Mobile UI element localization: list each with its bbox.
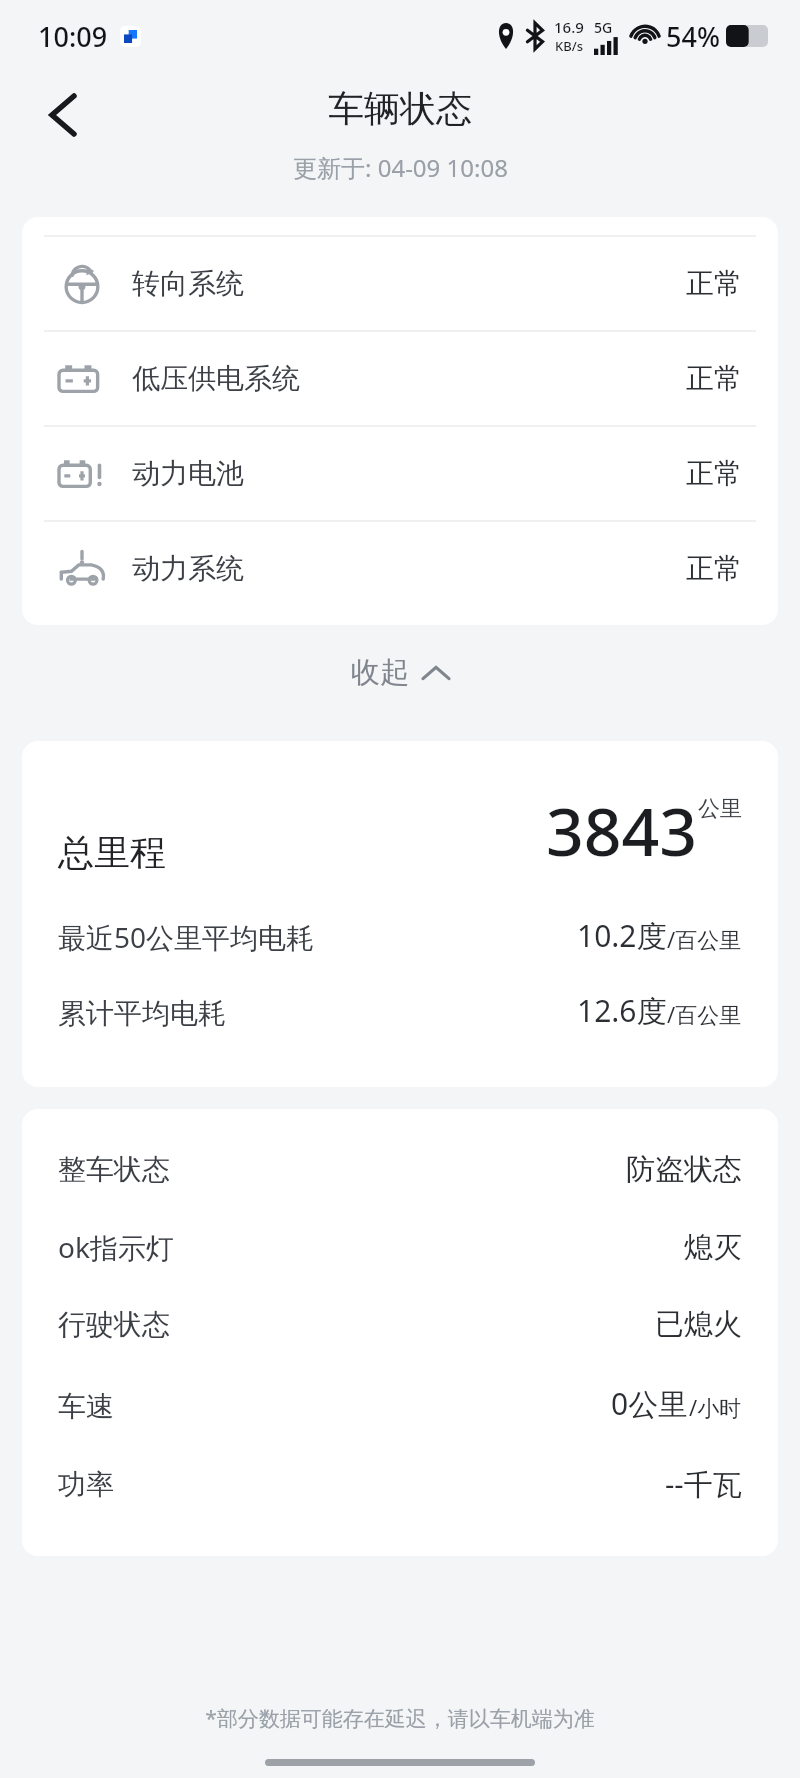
button[interactable]: 转向系统 [22,235,778,330]
staticText: --千瓦 [665,1464,742,1504]
staticText: /小时 [689,1392,742,1422]
button[interactable]: 收起 [327,644,473,701]
staticText: 低压供电系统 [132,361,300,396]
staticText: 公里 [698,795,742,823]
staticText: 54% [666,18,720,55]
staticText: 更新于: 04-09 10:08 [293,151,508,184]
button[interactable]: 动力系统 [22,520,778,615]
staticText: 车辆状态 [328,86,472,131]
button[interactable]: 总里程 [58,785,742,875]
button[interactable]: 整车状态 [58,1151,742,1188]
staticText: 总里程 [58,830,166,875]
staticText: KB/s [555,37,584,55]
staticText: 正常 [686,551,742,586]
staticText: 熄灭 [684,1229,742,1266]
staticText: 正常 [686,361,742,396]
staticText: 10:09 [38,18,108,55]
staticText: 动力电池 [132,456,244,491]
staticText: 动力系统 [132,551,244,586]
button[interactable]: 行驶状态 [58,1306,742,1343]
staticText: 转向系统 [132,266,244,301]
staticText: 累计平均电耗 [58,996,226,1031]
staticText: ok指示灯 [58,1228,174,1266]
staticText: 0公里 [611,1383,689,1424]
button[interactable]: 动力电池 [22,425,778,520]
staticText: 防盗状态 [626,1151,742,1188]
staticText: 12.6度 [577,990,667,1031]
staticText: 5G [594,18,613,37]
staticText: /百公里 [667,924,742,954]
staticText: *部分数据可能存在延迟，请以车机端为准 [0,1704,800,1733]
button[interactable]: ok指示灯 [58,1228,742,1266]
button[interactable]: 最近50公里平均电耗 [58,915,742,956]
button[interactable]: 累计平均电耗 [58,990,742,1031]
staticText: 车速 [58,1389,114,1424]
staticText: 3843 [546,785,698,875]
staticText: 正常 [686,266,742,301]
staticText: 行驶状态 [58,1307,170,1342]
button[interactable]: 返回 [26,78,100,152]
staticText: 功率 [58,1467,114,1502]
staticText: 整车状态 [58,1152,170,1187]
staticText: 收起 [351,654,409,691]
staticText: 16.9 [554,17,584,37]
staticText: 已熄火 [655,1306,742,1343]
staticText: 正常 [686,456,742,491]
button[interactable]: 低压供电系统 [22,330,778,425]
staticText: 10.2度 [577,915,667,956]
button[interactable]: 车速 [58,1383,742,1424]
staticText: 最近50公里平均电耗 [58,918,315,956]
staticText: /百公里 [667,999,742,1029]
button[interactable]: 功率 [58,1464,742,1504]
